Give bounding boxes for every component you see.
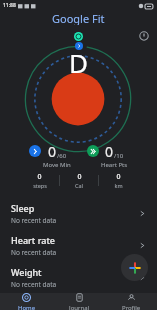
staticText: Sleep (11, 202, 35, 214)
staticText: No recent data (11, 216, 57, 225)
staticText: Google Fit (52, 11, 105, 25)
button[interactable]: Heart rate (0, 229, 157, 261)
button[interactable]: Sleep (0, 197, 157, 229)
button[interactable]: Weight (0, 261, 157, 293)
button[interactable]: 0 (60, 172, 98, 189)
staticText: Home (18, 304, 36, 310)
staticText: 0 (116, 172, 121, 182)
staticText: km (114, 182, 123, 189)
staticText: Profile (122, 304, 141, 310)
button[interactable]: Move Minutes goal (75, 42, 83, 50)
staticText: 0 (48, 142, 57, 161)
staticText: Heart Pts (101, 161, 128, 169)
staticText: 0 (77, 172, 82, 182)
staticText: Weight (11, 266, 42, 278)
button[interactable]: 0 (99, 172, 137, 189)
button[interactable]: Heart Points goal (74, 32, 83, 41)
staticText: /60 (57, 152, 67, 160)
staticText: steps (33, 182, 47, 189)
button[interactable]: 0 (86, 142, 129, 169)
button[interactable]: Home (0, 293, 53, 310)
staticText: Heart rate (11, 234, 56, 246)
button[interactable]: Journal (53, 293, 105, 310)
staticText: No recent data (11, 248, 57, 257)
staticText: Cal (75, 182, 83, 189)
staticText: 11:88 (3, 2, 16, 9)
staticText: Move Min (43, 161, 71, 169)
staticText: D (69, 45, 88, 80)
button[interactable]: 0 (28, 142, 72, 169)
button[interactable]: 0 (20, 172, 59, 189)
staticText: /10 (114, 152, 124, 160)
staticText: Journal (69, 304, 90, 310)
staticText: 0 (105, 142, 114, 161)
button[interactable]: Add (121, 254, 148, 281)
staticText: 0 (37, 172, 42, 182)
staticText: No recent data (11, 280, 57, 289)
button[interactable]: Profile (105, 293, 157, 310)
button[interactable]: Profile (138, 30, 150, 42)
